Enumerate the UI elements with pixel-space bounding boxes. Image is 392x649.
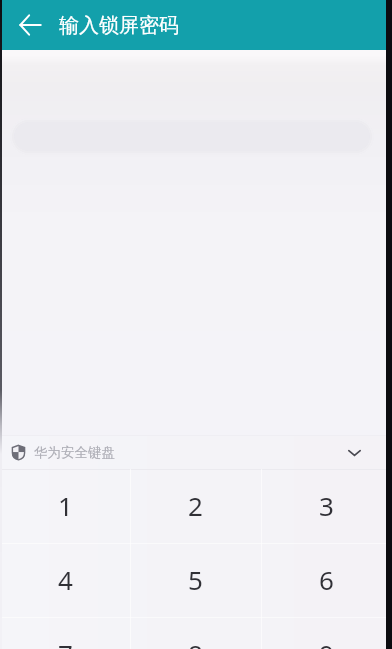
button[interactable]: 1 — [0, 468, 130, 542]
staticText: 6 — [319, 562, 334, 597]
button[interactable]: 3 — [261, 468, 392, 542]
staticText: 5 — [188, 562, 203, 597]
button[interactable]: 华为安全键盘 — [0, 435, 392, 469]
button[interactable]: 5 — [130, 542, 261, 616]
button[interactable]: Collapse keyboard — [332, 435, 376, 469]
button[interactable]: 4 — [0, 542, 130, 616]
staticText: 输入锁屏密码 — [59, 13, 179, 38]
button[interactable]: 8 — [130, 616, 261, 649]
staticText: 2 — [188, 488, 203, 523]
button[interactable]: 7 — [0, 616, 130, 649]
staticText: 4 — [58, 562, 73, 597]
staticText: 1 — [58, 488, 73, 523]
staticText: 3 — [319, 488, 334, 523]
staticText: 8 — [188, 636, 203, 649]
button[interactable]: 2 — [130, 468, 261, 542]
button[interactable]: 9 — [261, 616, 392, 649]
staticText: 7 — [58, 636, 73, 649]
staticText: 华为安全键盘 — [34, 444, 115, 461]
button[interactable]: 6 — [261, 542, 392, 616]
staticText: 9 — [319, 636, 334, 649]
button[interactable]: Back — [0, 0, 54, 50]
